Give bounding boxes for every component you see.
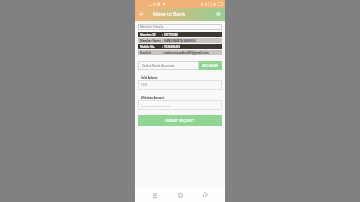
staticText: Withdraw Amount [141, 96, 164, 100]
staticText: Email id [140, 51, 162, 55]
staticText: mohanraosadhu969@gmail.com [164, 51, 209, 55]
staticText: Member Details [140, 25, 164, 29]
staticText: : [162, 33, 163, 37]
button[interactable]: Account [214, 10, 223, 19]
staticText: Valid Balance [141, 76, 158, 80]
staticText: Select Bank Account [142, 63, 175, 68]
staticText: ADD BANK [202, 64, 219, 68]
button[interactable]: Back [200, 190, 210, 200]
staticText: Move to Bank [153, 11, 186, 18]
staticText: : [162, 51, 163, 55]
button[interactable]: SUBMIT REQUEST [138, 115, 222, 126]
button[interactable]: Recents [150, 190, 160, 200]
staticText: Enter Withdrawal Amount [141, 104, 171, 107]
staticText: Mobile No. [140, 45, 162, 49]
staticText: Member ID [140, 33, 162, 37]
staticText: ₹0.0 [141, 83, 148, 87]
staticText: HANUMANTA SADHUN [164, 39, 196, 43]
staticText: MT770486 [164, 33, 178, 37]
button[interactable]: Select Bank Account [138, 61, 199, 70]
button[interactable]: Enter Withdrawal Amount [138, 100, 222, 110]
staticText: 7620403463 [164, 45, 180, 49]
staticText: SUBMIT REQUEST [165, 118, 195, 123]
staticText: : [162, 45, 163, 49]
button[interactable]: ADD BANK [199, 61, 222, 70]
button[interactable]: Home [175, 190, 185, 200]
button[interactable]: Back [137, 10, 146, 19]
staticText: Member Name [140, 39, 162, 43]
staticText: : [162, 39, 163, 43]
